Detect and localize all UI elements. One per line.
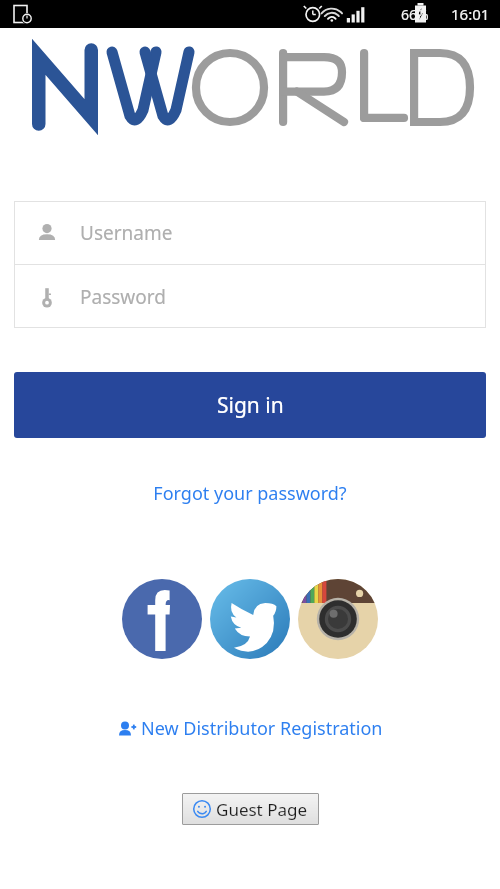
staticText: Sign in xyxy=(217,391,284,420)
staticText: 66% xyxy=(401,5,429,24)
button[interactable]: Facebook xyxy=(122,579,202,659)
button[interactable]: Password xyxy=(14,265,486,328)
button[interactable]: Guest Page xyxy=(182,793,319,825)
button[interactable]: Twitter xyxy=(210,579,290,659)
staticText: New Distributor Registration xyxy=(141,716,383,741)
staticText: Password xyxy=(80,284,166,310)
staticText: Username xyxy=(80,220,173,246)
button[interactable]: Forgot your password? xyxy=(141,475,359,512)
button[interactable]: New Distributor Registration xyxy=(107,710,393,747)
staticText: Forgot your password? xyxy=(153,481,347,506)
staticText: Guest Page xyxy=(216,798,308,821)
staticText: 16:01 xyxy=(451,4,490,24)
button[interactable]: Instagram xyxy=(298,579,378,659)
button[interactable]: Username xyxy=(14,201,486,264)
button[interactable]: Sign in xyxy=(14,372,486,438)
